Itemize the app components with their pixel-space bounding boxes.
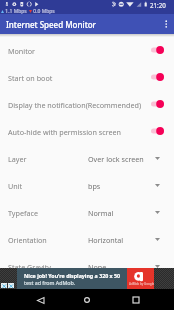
staticText: Display the notification(Recommended): [8, 100, 151, 110]
staticText: Typeface: [8, 208, 88, 218]
button[interactable]: Recents: [125, 291, 147, 309]
staticText: Auto-hide with permission screen: [8, 127, 151, 137]
staticText: AdMob by Google: [129, 282, 155, 286]
button[interactable]: Monitor: [0, 37, 174, 64]
button[interactable]: AdMob by Google: [127, 268, 154, 289]
staticText: Start on boot: [8, 73, 151, 83]
staticText: 21:20: [150, 1, 166, 9]
staticText: Horizontal: [88, 235, 155, 245]
button[interactable]: Close ad: [1, 283, 7, 288]
staticText: Orientation: [8, 235, 88, 245]
staticText: None: [88, 262, 155, 272]
staticText: State Gravity: [8, 262, 88, 272]
staticText: Internet Speed Monitor: [6, 19, 96, 30]
button[interactable]: State Gravity: [0, 253, 174, 280]
staticText: Normal: [88, 208, 155, 218]
button[interactable]: Close ad: [8, 283, 14, 288]
button[interactable]: Orientation: [0, 226, 174, 253]
staticText: Monitor: [8, 46, 151, 56]
staticText: Unit: [8, 181, 88, 191]
staticText: Nice job! You're displaying a 320 x 50: [24, 272, 121, 279]
staticText: 1.1 Mbps: [4, 8, 29, 15]
staticText: test ad from AdMob.: [24, 279, 76, 286]
staticText: Over lock screen: [88, 154, 155, 164]
button[interactable]: Unit: [0, 172, 174, 199]
staticText: 0.0 Mbps: [32, 8, 55, 15]
button[interactable]: Layer: [0, 145, 174, 172]
button[interactable]: Start on boot: [0, 64, 174, 91]
button[interactable]: Back: [29, 291, 51, 309]
button[interactable]: Display the notification(Recommended): [0, 91, 174, 118]
button[interactable]: Home: [76, 291, 98, 309]
button[interactable]: Nice job! You're displaying a 320 x 50: [17, 268, 127, 289]
button[interactable]: Auto-hide with permission screen: [0, 118, 174, 145]
staticText: Layer: [8, 154, 88, 164]
button[interactable]: More options: [156, 14, 174, 34]
button[interactable]: Typeface: [0, 199, 174, 226]
staticText: bps: [88, 181, 155, 191]
